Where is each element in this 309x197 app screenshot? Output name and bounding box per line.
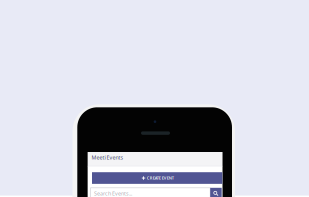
staticText: Search Events... [94,190,132,197]
button[interactable]: Search [210,188,222,197]
button[interactable]: CREATE EVENT [92,172,222,184]
staticText: Meeti Events [92,154,124,161]
staticText: CREATE EVENT [147,175,174,180]
